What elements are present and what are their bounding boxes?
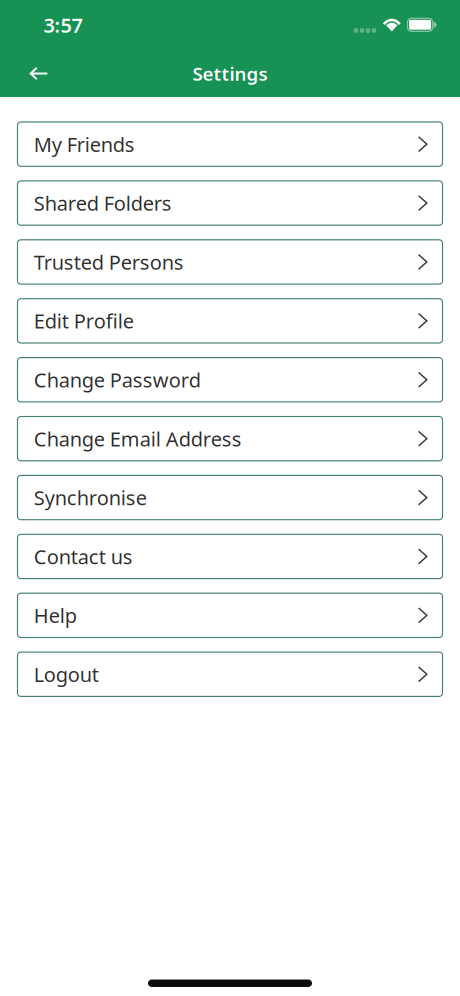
button[interactable]: Help [17,593,442,637]
button[interactable]: Change Email Address [17,416,442,461]
staticText: Synchronise [34,484,147,511]
button[interactable]: Contact us [17,534,442,579]
staticText: Shared Folders [34,190,172,216]
button[interactable]: Synchronise [17,475,442,520]
staticText: Trusted Persons [34,249,184,275]
button[interactable]: Trusted Persons [17,240,442,284]
button[interactable]: Back [12,51,66,95]
button[interactable]: Shared Folders [17,181,442,225]
staticText: Logout [34,661,99,688]
staticText: Help [34,602,77,629]
button[interactable]: Logout [17,652,442,696]
staticText: Settings [192,61,267,86]
staticText: 3:57 [43,12,82,38]
staticText: Contact us [34,543,133,570]
button[interactable]: Edit Profile [17,299,442,343]
staticText: Change Password [34,366,201,393]
button[interactable]: Change Password [17,358,442,402]
button[interactable]: My Friends [17,122,442,166]
staticText: My Friends [34,131,135,157]
staticText: Change Email Address [34,425,242,452]
staticText: Edit Profile [34,308,134,334]
